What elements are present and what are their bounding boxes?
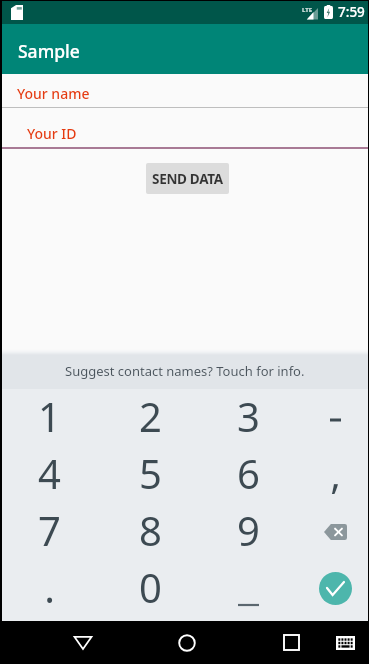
button[interactable]: 8 — [101, 503, 200, 560]
staticText: 9 — [237, 503, 260, 557]
button[interactable]: . — [0, 560, 99, 617]
staticText: 0 — [139, 560, 162, 614]
button[interactable]: 0 — [101, 560, 200, 617]
staticText: 5 — [139, 446, 162, 500]
button[interactable] — [298, 389, 369, 446]
staticText: 7:59 — [338, 3, 365, 21]
button[interactable]: Back — [60, 621, 105, 664]
button[interactable]: Switch keyboard — [323, 621, 368, 664]
button[interactable]: 1 — [0, 389, 99, 446]
staticText: 6 — [237, 446, 260, 500]
button[interactable] — [199, 560, 298, 617]
button[interactable]: Home — [164, 621, 209, 664]
button[interactable]: Your ID — [0, 108, 369, 149]
button[interactable]: Recents — [269, 621, 314, 664]
staticText: Suggest contact names? Touch for info. — [65, 362, 305, 380]
button[interactable]: 7 — [0, 503, 99, 560]
staticText: . — [44, 560, 55, 614]
button[interactable]: , — [298, 446, 369, 503]
staticText: SEND DATA — [152, 170, 223, 188]
staticText: 4 — [38, 446, 61, 500]
button[interactable]: 3 — [199, 389, 298, 446]
button[interactable]: 4 — [0, 446, 99, 503]
button[interactable]: 6 — [199, 446, 298, 503]
button[interactable]: Backspace — [298, 503, 369, 560]
staticText: 2 — [139, 389, 162, 443]
other: Enter — [319, 572, 352, 605]
button[interactable]: 5 — [101, 446, 200, 503]
button[interactable]: 2 — [101, 389, 200, 446]
staticText: Your name — [17, 84, 90, 103]
button[interactable]: Your name — [0, 74, 369, 108]
staticText: , — [330, 446, 341, 500]
staticText: Your ID — [27, 124, 77, 143]
button[interactable]: SEND DATA — [146, 163, 229, 194]
staticText: 8 — [139, 503, 162, 557]
staticText: Sample — [18, 39, 80, 63]
other: Backspace — [324, 524, 347, 540]
button[interactable]: 9 — [199, 503, 298, 560]
staticText: LTE — [302, 6, 313, 14]
staticText: 3 — [237, 389, 260, 443]
staticText: 1 — [38, 389, 61, 443]
button[interactable]: Suggest contact names? Touch for info. — [0, 355, 369, 389]
button[interactable]: Enter — [298, 560, 369, 617]
staticText: 7 — [38, 503, 61, 557]
